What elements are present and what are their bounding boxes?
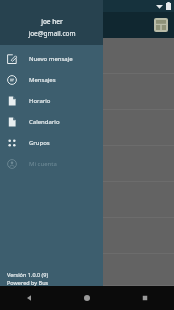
staticText: Mi cuenta bbox=[29, 160, 57, 168]
button[interactable]: Mensajes bbox=[0, 69, 103, 90]
staticText: Mensajes bbox=[29, 76, 56, 84]
staticText: joe her bbox=[41, 17, 63, 26]
button[interactable]: Calendario bbox=[0, 111, 103, 132]
button[interactable]: Nuevo mensaje bbox=[0, 48, 103, 69]
staticText: Powered by Bus bbox=[7, 279, 49, 286]
button[interactable]: Profile bbox=[154, 18, 168, 32]
button[interactable]: Home bbox=[58, 286, 116, 310]
staticText: Calendario bbox=[29, 118, 60, 126]
staticText: Versión 1.0.0 (9) bbox=[7, 271, 49, 278]
staticText: Horario bbox=[29, 97, 51, 105]
staticText: Cerrar sesión bbox=[25, 296, 64, 304]
button[interactable]: Grupos bbox=[0, 132, 103, 153]
staticText: Nuevo mensaje bbox=[29, 55, 73, 63]
button[interactable]: Recents bbox=[116, 286, 174, 310]
button[interactable]: Mi cuenta bbox=[0, 153, 103, 174]
button[interactable]: Back bbox=[0, 286, 58, 310]
staticText: joe@gmail.com bbox=[28, 29, 76, 38]
button[interactable]: Cerrar sesión bbox=[0, 290, 103, 310]
button[interactable]: Horario bbox=[0, 90, 103, 111]
staticText: Grupos bbox=[29, 139, 50, 147]
